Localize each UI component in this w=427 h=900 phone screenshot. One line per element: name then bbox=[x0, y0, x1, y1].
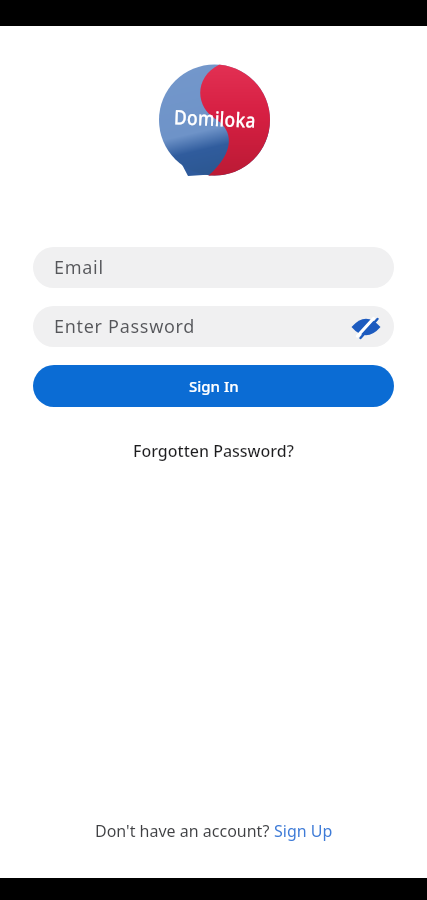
staticText: Email bbox=[54, 255, 104, 280]
staticText: Don't have an account? bbox=[95, 820, 274, 842]
button[interactable]: Email bbox=[33, 247, 394, 288]
staticText: Domiloka bbox=[174, 103, 256, 134]
staticText: Sign Up bbox=[274, 820, 333, 842]
button[interactable]: Sign Up bbox=[274, 820, 333, 842]
staticText: Sign In bbox=[189, 376, 239, 396]
staticText: Enter Password bbox=[54, 314, 196, 339]
button[interactable]: Sign In bbox=[33, 365, 394, 407]
staticText: Forgotten Password? bbox=[133, 440, 294, 462]
button[interactable]: Forgotten Password? bbox=[127, 437, 300, 465]
button[interactable]: Enter Password bbox=[33, 306, 394, 347]
